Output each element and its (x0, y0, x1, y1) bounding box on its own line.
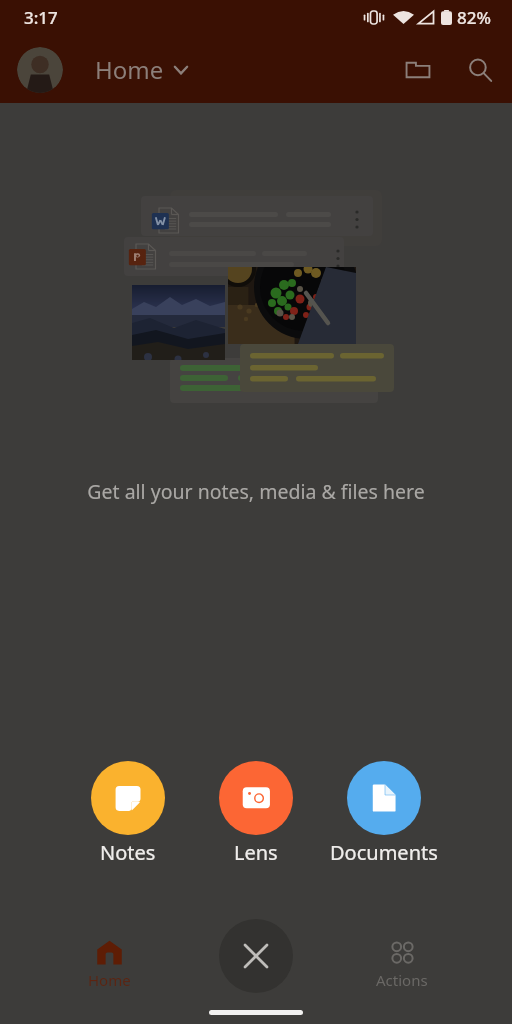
button[interactable]: Home (93, 45, 190, 94)
staticText: Home (88, 970, 131, 990)
staticText: Home (95, 53, 164, 86)
staticText: 82% (457, 6, 491, 29)
staticText: Lens (234, 839, 278, 866)
button[interactable]: Notes (64, 761, 192, 866)
button[interactable]: Lens (192, 761, 320, 866)
button[interactable]: Home (36, 940, 182, 990)
staticText: Get all your notes, media & files here (87, 478, 425, 505)
staticText: Actions (376, 970, 428, 990)
button[interactable]: Account (17, 47, 63, 93)
button[interactable]: Search (456, 46, 504, 94)
button[interactable]: Actions (329, 940, 475, 990)
button[interactable]: Folder (394, 46, 442, 94)
button[interactable]: Close (219, 919, 293, 993)
staticText: Documents (330, 839, 438, 866)
staticText: Notes (100, 839, 156, 866)
button[interactable]: Documents (320, 761, 448, 866)
staticText: 3:17 (24, 6, 58, 29)
